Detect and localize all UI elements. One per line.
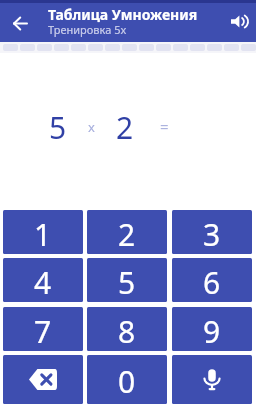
button[interactable]: 1 (3, 210, 83, 254)
staticText: Тренировка 5x (48, 22, 127, 37)
staticText: 6 (203, 262, 221, 302)
staticText: 5 (49, 107, 67, 148)
staticText: 7 (34, 311, 52, 351)
button[interactable]: 6 (172, 258, 252, 302)
staticText: 0 (118, 361, 136, 402)
staticText: 1 (34, 214, 52, 254)
button[interactable]: 9 (172, 307, 252, 351)
button[interactable] (8, 11, 32, 35)
button[interactable]: 5 (87, 258, 167, 302)
staticText: = (160, 116, 169, 136)
staticText: 5 (118, 262, 136, 302)
staticText: Таблица Умножения (48, 5, 198, 24)
button[interactable]: 8 (87, 307, 167, 351)
staticText: 2 (116, 107, 134, 148)
button[interactable]: 0 (87, 355, 167, 404)
staticText: 8 (118, 311, 136, 351)
button[interactable]: 2 (87, 210, 167, 254)
button[interactable] (225, 8, 251, 34)
button[interactable] (172, 355, 252, 404)
button[interactable]: 3 (172, 210, 252, 254)
staticText: 3 (203, 214, 221, 254)
staticText: 2 (118, 214, 136, 254)
button[interactable]: 7 (3, 307, 83, 351)
staticText: x (88, 118, 95, 136)
staticText: 9 (203, 311, 221, 351)
staticText: 4 (34, 262, 52, 302)
button[interactable]: 4 (3, 258, 83, 302)
button[interactable] (3, 355, 83, 404)
